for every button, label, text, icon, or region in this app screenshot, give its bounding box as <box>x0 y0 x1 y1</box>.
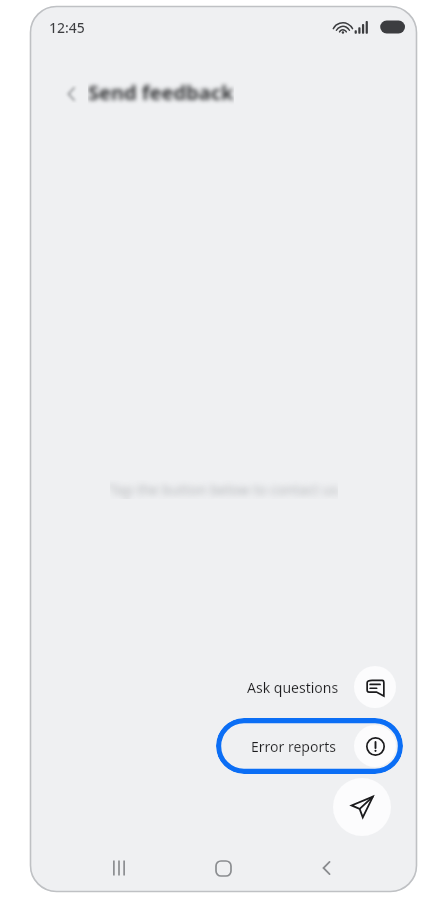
button[interactable]: Back <box>296 844 358 892</box>
button[interactable]: Home <box>192 844 254 892</box>
staticText: Ask questions <box>247 678 339 697</box>
staticText: Error reports <box>251 737 336 756</box>
button[interactable]: Ask questions <box>216 659 403 715</box>
button[interactable]: Send feedback <box>333 778 391 836</box>
staticText: Send feedback <box>88 79 234 106</box>
staticText: Tap the button below to contact us <box>110 480 338 499</box>
button[interactable]: Recent apps <box>88 844 150 892</box>
staticText: 12:45 <box>49 18 85 37</box>
button[interactable]: Error reports <box>216 718 403 774</box>
button[interactable]: Navigate up <box>52 74 92 114</box>
